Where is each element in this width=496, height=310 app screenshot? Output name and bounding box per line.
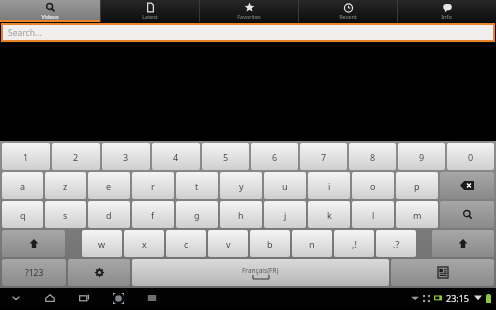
staticText: w xyxy=(98,238,106,250)
button[interactable]: m xyxy=(396,201,438,228)
staticText: ?123 xyxy=(25,267,44,279)
button[interactable]: j xyxy=(264,201,306,228)
button[interactable]: Back xyxy=(6,288,26,308)
button[interactable]: Recent xyxy=(298,0,397,22)
button[interactable]: c xyxy=(166,230,206,257)
staticText: 1 xyxy=(23,151,29,163)
button[interactable]: Search xyxy=(440,201,494,228)
staticText: Videos xyxy=(41,13,59,20)
staticText: g xyxy=(194,209,200,221)
button[interactable]: p xyxy=(396,172,438,199)
button[interactable]: Menu xyxy=(142,288,162,308)
staticText: 3 xyxy=(123,151,129,163)
button[interactable]: 7 xyxy=(300,143,347,170)
button[interactable]: v xyxy=(208,230,248,257)
staticText: m xyxy=(413,209,422,221)
button[interactable]: Backspace xyxy=(440,172,494,199)
button[interactable]: Home xyxy=(40,288,60,308)
button[interactable]: Screenshot xyxy=(108,288,128,308)
button[interactable]: Settings xyxy=(68,259,130,286)
button[interactable]: 9 xyxy=(398,143,445,170)
button[interactable]: n xyxy=(292,230,332,257)
staticText: p xyxy=(414,180,420,192)
staticText: u xyxy=(282,180,288,192)
button[interactable]: 1 xyxy=(2,143,50,170)
staticText: o xyxy=(370,180,376,192)
staticText: c xyxy=(184,238,189,250)
staticText: h xyxy=(238,209,244,221)
staticText: Latest xyxy=(142,13,158,20)
button[interactable]: i xyxy=(308,172,350,199)
button[interactable]: r xyxy=(132,172,174,199)
staticText: 6 xyxy=(272,151,278,163)
button[interactable]: q xyxy=(2,201,43,228)
button[interactable]: 6 xyxy=(251,143,298,170)
staticText: 4 xyxy=(173,151,179,163)
button[interactable]: k xyxy=(308,201,350,228)
button[interactable]: h xyxy=(220,201,262,228)
button[interactable]: y xyxy=(220,172,262,199)
button[interactable]: Videos xyxy=(0,0,100,22)
staticText: Français(FR) xyxy=(242,266,279,275)
staticText: v xyxy=(226,238,231,250)
staticText: j xyxy=(284,209,287,221)
staticText: 7 xyxy=(321,151,327,163)
button[interactable]: 0 xyxy=(447,143,494,170)
button[interactable]: Recents xyxy=(74,288,94,308)
staticText: y xyxy=(239,180,244,192)
staticText: 23:15 xyxy=(446,292,470,304)
staticText: t xyxy=(195,180,199,192)
staticText: n xyxy=(309,238,315,250)
staticText: d xyxy=(106,209,112,221)
staticText: s xyxy=(63,209,68,221)
staticText: Info xyxy=(441,13,452,20)
button[interactable]: d xyxy=(88,201,130,228)
staticText: i xyxy=(328,180,331,192)
staticText: x xyxy=(142,238,147,250)
button[interactable]: Latest xyxy=(100,0,199,22)
staticText: Search... xyxy=(8,27,42,39)
button[interactable]: u xyxy=(264,172,306,199)
button[interactable]: f xyxy=(132,201,174,228)
button[interactable]: Shift xyxy=(432,230,494,257)
button[interactable]: a xyxy=(2,172,43,199)
button[interactable]: Enter xyxy=(391,259,494,286)
button[interactable]: s xyxy=(45,201,86,228)
button[interactable]: Shift xyxy=(2,230,65,257)
button[interactable]: l xyxy=(352,201,394,228)
button[interactable]: .? xyxy=(376,230,416,257)
button[interactable]: o xyxy=(352,172,394,199)
button[interactable]: t xyxy=(176,172,218,199)
button[interactable]: 3 xyxy=(102,143,150,170)
button[interactable]: Space xyxy=(132,259,389,286)
button[interactable]: Search... xyxy=(3,25,493,40)
staticText: 5 xyxy=(223,151,229,163)
button[interactable]: Info xyxy=(397,0,496,22)
button[interactable]: 4 xyxy=(152,143,200,170)
staticText: f xyxy=(151,209,155,221)
button[interactable]: w xyxy=(82,230,122,257)
staticText: b xyxy=(267,238,273,250)
button[interactable]: ?123 xyxy=(2,259,66,286)
button[interactable]: ,! xyxy=(334,230,374,257)
staticText: ,! xyxy=(352,238,357,250)
button[interactable]: Favorites xyxy=(199,0,298,22)
staticText: .? xyxy=(393,238,400,250)
staticText: e xyxy=(106,180,112,192)
button[interactable]: e xyxy=(88,172,130,199)
button[interactable]: z xyxy=(45,172,86,199)
staticText: k xyxy=(327,209,332,221)
staticText: 9 xyxy=(419,151,425,163)
button[interactable]: 5 xyxy=(202,143,249,170)
staticText: 0 xyxy=(468,151,474,163)
button[interactable]: g xyxy=(176,201,218,228)
staticText: 2 xyxy=(73,151,79,163)
button[interactable]: b xyxy=(250,230,290,257)
staticText: 8 xyxy=(370,151,376,163)
button[interactable]: 8 xyxy=(349,143,396,170)
staticText: r xyxy=(151,180,155,192)
staticText: a xyxy=(20,180,26,192)
staticText: Favorites xyxy=(237,13,261,20)
button[interactable]: x xyxy=(124,230,164,257)
button[interactable]: 2 xyxy=(52,143,100,170)
